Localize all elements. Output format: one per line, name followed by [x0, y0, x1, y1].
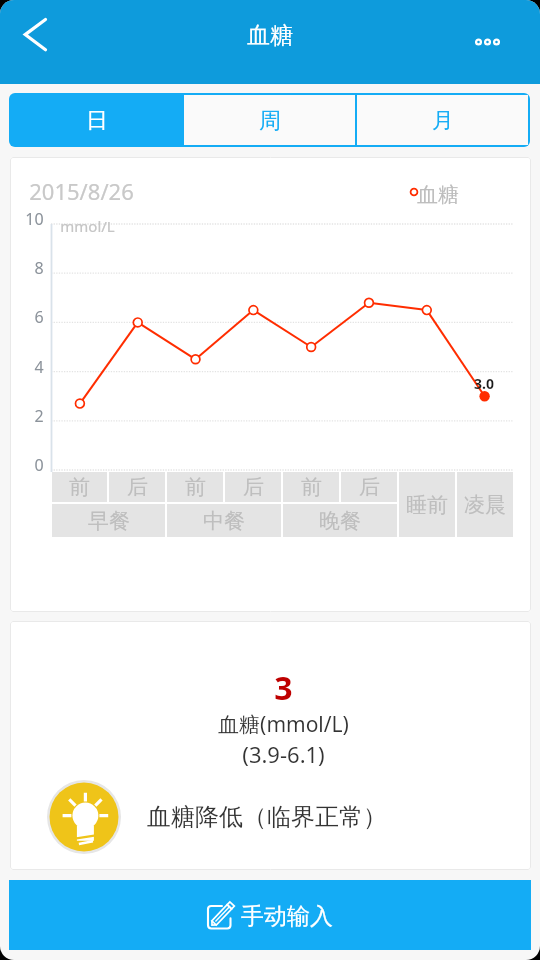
staticText: 凌晨 — [464, 492, 506, 518]
staticText: (3.9-6.1) — [242, 739, 325, 769]
staticText: 前 — [185, 474, 206, 500]
staticText: 后 — [243, 474, 264, 500]
staticText: 血糖(mmol/L) — [218, 710, 349, 739]
button[interactable]: Back — [3, 3, 65, 65]
staticText: 后 — [127, 474, 148, 500]
staticText: 前 — [69, 474, 90, 500]
staticText: 4 — [34, 356, 44, 378]
button[interactable]: 周 — [184, 95, 355, 145]
staticText: 2015/8/26 — [29, 176, 134, 206]
staticText: 血糖降低（临界正常） — [147, 802, 387, 832]
staticText: 8 — [34, 257, 44, 279]
button[interactable]: 手动输入 — [9, 880, 531, 950]
staticText: 3.0 — [474, 374, 494, 393]
staticText: 睡前 — [406, 492, 448, 518]
staticText: 手动输入 — [241, 902, 333, 931]
staticText: 日 — [86, 107, 108, 135]
button[interactable]: 日 — [11, 95, 182, 145]
staticText: 3 — [274, 666, 293, 710]
staticText: 0 — [34, 454, 44, 476]
button[interactable]: 月 — [357, 95, 528, 145]
staticText: 晚餐 — [319, 508, 361, 534]
staticText: 前 — [301, 474, 322, 500]
staticText: mmol/L — [60, 216, 115, 236]
staticText: 6 — [34, 306, 44, 328]
staticText: 早餐 — [88, 508, 130, 534]
staticText: 2 — [34, 405, 44, 427]
staticText: 血糖 — [417, 182, 459, 208]
staticText: 周 — [259, 107, 281, 135]
staticText: 中餐 — [203, 508, 245, 534]
staticText: 10 — [25, 208, 44, 230]
button[interactable]: More options — [458, 12, 518, 72]
staticText: 后 — [359, 474, 380, 500]
staticText: 月 — [432, 107, 454, 135]
staticText: 血糖 — [247, 21, 293, 50]
